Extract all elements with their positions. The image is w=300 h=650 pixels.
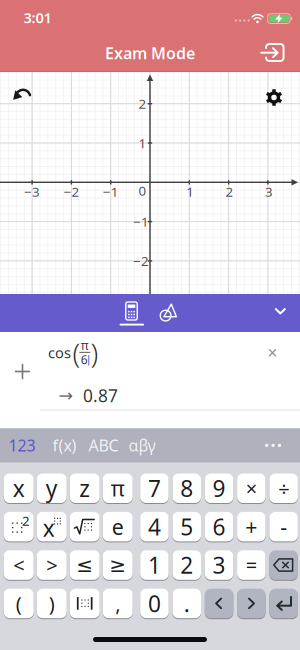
staticText: 2 <box>138 95 146 112</box>
button[interactable]: More <box>265 444 281 447</box>
staticText: 8 <box>180 473 193 503</box>
staticText: ) <box>90 334 98 371</box>
button[interactable]: New expression <box>10 359 34 383</box>
staticText: −2 <box>63 183 79 200</box>
button[interactable]: 9 <box>205 473 233 503</box>
staticText: 1 <box>138 134 146 152</box>
button[interactable]: 2 <box>172 550 201 580</box>
staticText: 3 <box>265 183 273 200</box>
button[interactable]: z <box>70 473 100 503</box>
button[interactable]: square <box>4 511 34 542</box>
button[interactable]: , <box>103 588 133 619</box>
staticText: 6 <box>213 512 226 542</box>
staticText: 0 <box>138 182 146 199</box>
button[interactable]: e <box>103 511 133 542</box>
button[interactable]: f(x) <box>49 432 79 458</box>
button[interactable]: square root <box>70 511 100 542</box>
staticText: 3:01 <box>23 8 51 27</box>
staticText: . <box>184 588 190 618</box>
staticText: −2 <box>133 252 149 270</box>
staticText: ÷ <box>278 475 289 502</box>
staticText: 1 <box>186 183 194 200</box>
staticText: 9 <box>213 473 226 503</box>
button[interactable]: ABC <box>86 432 120 458</box>
button[interactable]: y <box>37 473 67 503</box>
staticText: ( <box>72 334 80 371</box>
staticText: , <box>115 590 120 617</box>
staticText: + <box>245 512 257 541</box>
staticText: 2 <box>226 183 234 200</box>
button[interactable]: Calculator <box>116 300 148 327</box>
button[interactable]: Move cursor right <box>237 588 266 619</box>
button[interactable]: ÷ <box>269 473 298 503</box>
staticText: −1 <box>103 183 119 200</box>
button[interactable]: Enter <box>269 588 298 619</box>
staticText: 5 <box>180 512 193 542</box>
staticText: e <box>112 512 124 541</box>
button[interactable]: Delete <box>269 550 298 580</box>
button[interactable]: power <box>37 511 67 542</box>
staticText: ≥ <box>109 554 126 576</box>
staticText: −1 <box>133 213 149 230</box>
staticText: = <box>246 552 257 578</box>
staticText: 123 <box>8 435 35 456</box>
staticText: > <box>46 552 57 578</box>
button[interactable]: ( <box>4 588 34 619</box>
staticText: ) <box>49 590 55 617</box>
button[interactable]: Move cursor left <box>205 588 233 619</box>
staticText: π <box>111 474 125 502</box>
button[interactable]: π <box>103 473 133 503</box>
button[interactable]: < <box>4 550 34 580</box>
staticText: → <box>58 386 73 405</box>
button[interactable]: 0 <box>140 588 169 619</box>
staticText: y <box>46 473 58 503</box>
button[interactable]: + <box>237 511 266 542</box>
button[interactable]: 6 <box>205 511 233 542</box>
button[interactable]: x <box>4 473 34 503</box>
button[interactable]: > <box>37 550 67 580</box>
staticText: 3 <box>213 550 226 580</box>
staticText: ( <box>16 590 22 617</box>
button[interactable]: 123 <box>7 432 37 458</box>
button[interactable]: 4 <box>140 511 169 542</box>
staticText: Exam Mode <box>105 42 195 64</box>
button[interactable]: 1 <box>140 550 169 580</box>
staticText: - <box>280 512 287 541</box>
button[interactable]: 7 <box>140 473 169 503</box>
staticText: 6 <box>81 352 88 367</box>
staticText: f(x) <box>52 435 76 456</box>
button[interactable]: Settings <box>264 87 284 107</box>
staticText: × <box>267 341 277 364</box>
staticText: 7 <box>148 473 161 503</box>
staticText: × <box>246 475 257 502</box>
button[interactable]: αβγ <box>127 432 157 458</box>
button[interactable]: Hide keyboard <box>275 308 286 315</box>
staticText: π <box>81 337 89 353</box>
button[interactable]: = <box>237 550 266 580</box>
staticText: 1 <box>148 550 161 580</box>
staticText: < <box>13 552 24 578</box>
button[interactable]: 8 <box>172 473 201 503</box>
button[interactable]: ≤ <box>70 550 100 580</box>
button[interactable]: 5 <box>172 511 201 542</box>
button[interactable]: Undo <box>11 86 33 103</box>
staticText: −3 <box>24 183 40 200</box>
button[interactable]: ) <box>37 588 67 619</box>
staticText: cos <box>48 343 71 362</box>
button[interactable]: 3 <box>205 550 233 580</box>
staticText: αβγ <box>128 435 155 456</box>
button[interactable]: ≥ <box>103 550 133 580</box>
staticText: z <box>79 473 90 503</box>
staticText: x <box>13 473 25 503</box>
button[interactable]: - <box>269 511 298 542</box>
button[interactable]: absolute value <box>70 588 100 619</box>
button[interactable]: Exit exam mode <box>260 39 286 66</box>
button[interactable]: Remove expression <box>263 343 281 361</box>
button[interactable]: . <box>172 588 201 619</box>
button[interactable]: × <box>237 473 266 503</box>
staticText: 4 <box>148 512 161 542</box>
staticText: x <box>43 513 55 543</box>
staticText: 0 <box>148 588 161 618</box>
button[interactable]: Geometry <box>156 302 178 322</box>
staticText: 0.87 <box>83 384 118 407</box>
